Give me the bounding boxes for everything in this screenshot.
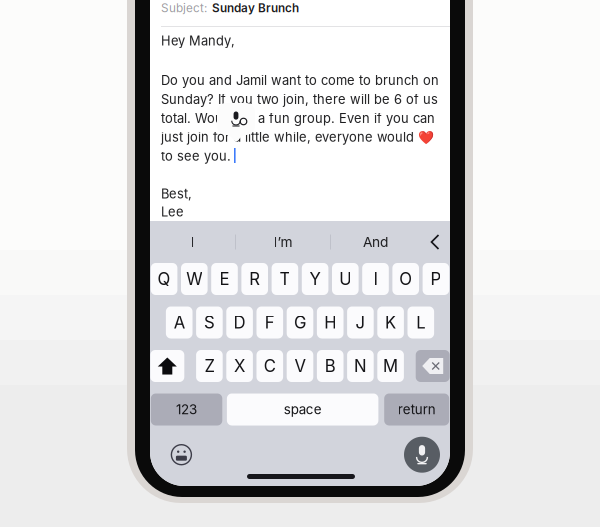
staticText: B xyxy=(325,356,336,376)
staticText: W xyxy=(186,269,202,289)
button[interactable]: R xyxy=(241,263,268,295)
staticText: Z xyxy=(204,356,214,376)
button[interactable]: Dictation xyxy=(404,437,440,473)
staticText: D xyxy=(234,312,246,333)
staticText: I xyxy=(373,269,377,289)
staticText: K xyxy=(385,312,396,333)
button[interactable]: space xyxy=(227,393,378,425)
staticText: space xyxy=(284,401,322,417)
button[interactable]: And xyxy=(331,221,420,263)
button[interactable]: Delete xyxy=(416,350,450,382)
button[interactable]: J xyxy=(347,306,374,338)
button[interactable]: Q xyxy=(151,263,177,295)
button[interactable]: A xyxy=(166,306,192,338)
button[interactable]: T xyxy=(272,263,298,295)
staticText: A xyxy=(174,312,185,333)
staticText: Subject: xyxy=(161,1,207,15)
staticText: 123 xyxy=(176,401,197,417)
button[interactable]: B xyxy=(317,350,343,382)
staticText: E xyxy=(219,269,229,289)
button[interactable]: C xyxy=(256,350,283,382)
button[interactable]: S xyxy=(196,306,223,338)
staticText: Do you and Jamil want to come to brunch … xyxy=(161,72,439,164)
staticText: X xyxy=(234,356,245,376)
staticText: H xyxy=(324,312,336,333)
staticText: R xyxy=(249,269,260,289)
staticText: L xyxy=(416,312,425,333)
button[interactable]: D xyxy=(226,306,253,338)
button[interactable]: E xyxy=(211,263,238,295)
button[interactable]: V xyxy=(287,350,313,382)
staticText: Best, xyxy=(161,186,192,202)
button[interactable]: P xyxy=(423,263,449,295)
button[interactable]: U xyxy=(332,263,359,295)
button[interactable]: G xyxy=(287,306,313,338)
staticText: And xyxy=(363,234,388,250)
staticText: I xyxy=(190,234,194,250)
staticText: T xyxy=(279,269,290,289)
staticText: S xyxy=(204,312,215,333)
button[interactable]: N xyxy=(347,350,374,382)
button[interactable]: More suggestions xyxy=(420,221,450,263)
staticText: G xyxy=(294,312,306,333)
staticText: P xyxy=(430,269,441,289)
staticText: Lee xyxy=(161,204,184,220)
staticText: V xyxy=(294,356,305,376)
staticText: Q xyxy=(158,269,171,289)
button[interactable]: Emoji keyboard xyxy=(166,440,196,470)
staticText: Hey Mandy, xyxy=(161,33,235,49)
staticText: N xyxy=(354,356,367,376)
staticText: Sunday Brunch xyxy=(212,1,299,15)
button[interactable]: M xyxy=(377,350,404,382)
button[interactable]: return xyxy=(384,393,449,425)
staticText: C xyxy=(264,356,276,376)
staticText: O xyxy=(399,269,412,289)
staticText: Subject: xyxy=(161,1,207,15)
button[interactable]: K xyxy=(377,306,404,338)
button[interactable]: X xyxy=(226,350,253,382)
button[interactable]: Y xyxy=(302,263,328,295)
staticText: Y xyxy=(310,269,321,289)
button[interactable]: F xyxy=(256,306,283,338)
staticText: Sunday Brunch xyxy=(212,1,299,15)
button[interactable]: Shift xyxy=(150,350,184,382)
button[interactable]: I xyxy=(150,221,235,263)
button[interactable]: L xyxy=(407,306,434,338)
button[interactable]: H xyxy=(317,306,343,338)
staticText: J xyxy=(355,312,365,333)
staticText: return xyxy=(398,401,436,417)
button[interactable]: W xyxy=(181,263,208,295)
button[interactable]: 123 xyxy=(151,393,222,425)
staticText: M xyxy=(383,356,398,376)
button[interactable]: O xyxy=(392,263,419,295)
staticText: I’m xyxy=(273,234,292,250)
staticText: U xyxy=(339,269,351,289)
staticText: F xyxy=(265,312,275,333)
button[interactable]: I’m xyxy=(236,221,330,263)
button[interactable]: Z xyxy=(196,350,223,382)
button[interactable]: I xyxy=(362,263,389,295)
